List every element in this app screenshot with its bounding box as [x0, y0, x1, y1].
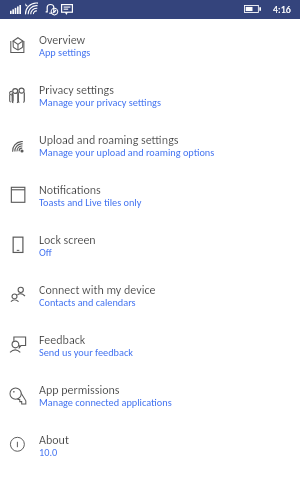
staticText: App settings: [39, 46, 91, 59]
staticText: Toasts and Live tiles only: [39, 196, 142, 209]
staticText: Send us your feedback: [39, 346, 133, 359]
button[interactable]: Upload and roaming settings: [0, 129, 300, 179]
button[interactable]: Privacy settings: [0, 79, 300, 129]
staticText: Manage your privacy settings: [39, 96, 161, 109]
button[interactable]: Overview: [0, 29, 300, 79]
button[interactable]: Feedback: [0, 329, 300, 379]
staticText: About: [39, 433, 69, 448]
button[interactable]: Notifications: [0, 179, 300, 229]
staticText: Overview: [39, 33, 86, 48]
staticText: Lock screen: [39, 233, 96, 248]
staticText: Privacy settings: [39, 83, 114, 98]
staticText: 10.0: [39, 446, 58, 459]
staticText: 4:16: [273, 3, 291, 15]
staticText: Feedback: [39, 333, 86, 348]
staticText: Connect with my device: [39, 283, 156, 298]
staticText: App permissions: [39, 383, 120, 398]
button[interactable]: About: [0, 429, 300, 479]
staticText: Off: [39, 246, 52, 259]
staticText: Manage your upload and roaming options: [39, 146, 215, 159]
button[interactable]: Lock screen: [0, 229, 300, 279]
button[interactable]: Connect with my device: [0, 279, 300, 329]
staticText: Notifications: [39, 183, 101, 198]
staticText: Upload and roaming settings: [39, 133, 179, 148]
staticText: Manage connected applications: [39, 396, 172, 409]
button[interactable]: App permissions: [0, 379, 300, 429]
staticText: Contacts and calendars: [39, 296, 136, 309]
